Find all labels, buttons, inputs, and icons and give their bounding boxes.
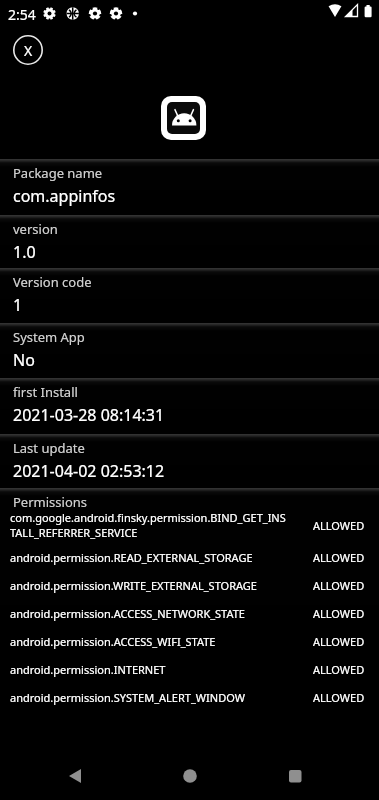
button[interactable] — [275, 756, 315, 796]
staticText: android.permission.READ_EXTERNAL_STORAGE — [10, 550, 253, 565]
staticText: 2021-03-28 08:14:31 — [13, 404, 165, 426]
button[interactable]: first Install — [0, 378, 379, 432]
staticText: No — [13, 349, 35, 371]
staticText: ALLOWED — [313, 662, 365, 677]
staticText: ALLOWED — [313, 690, 365, 705]
button[interactable]: Permissions — [0, 488, 379, 715]
staticText: Package name — [13, 164, 103, 182]
staticText: ALLOWED — [313, 578, 365, 593]
staticText: ALLOWED — [313, 634, 365, 649]
staticText: 2021-04-02 02:53:12 — [13, 460, 165, 482]
staticText: TALL_REFERRER_SERVICE — [10, 525, 138, 540]
staticText: Permissions — [13, 493, 88, 511]
staticText: com.google.android.finsky.permission.BIN… — [10, 510, 286, 525]
staticText: X — [24, 41, 33, 60]
staticText: first Install — [13, 383, 78, 401]
staticText: android.permission.ACCESS_WIFI_STATE — [10, 634, 216, 649]
staticText: ALLOWED — [313, 606, 365, 621]
staticText: Version code — [13, 273, 92, 291]
staticText: android.permission.INTERNET — [10, 662, 166, 677]
staticText: System App — [13, 328, 85, 346]
staticText: android.permission.WRITE_EXTERNAL_STORAG… — [10, 578, 257, 593]
staticText: version — [13, 220, 58, 238]
staticText: android.permission.SYSTEM_ALERT_WINDOW — [10, 690, 245, 705]
button[interactable]: Version code — [0, 268, 379, 322]
button[interactable] — [55, 756, 95, 796]
staticText: 2:54 — [8, 5, 36, 24]
button[interactable]: version — [0, 215, 379, 267]
staticText: ALLOWED — [313, 550, 365, 565]
staticText: 1 — [13, 294, 23, 316]
staticText: 1.0 — [13, 241, 36, 263]
staticText: Last update — [13, 439, 85, 457]
button[interactable]: Package name — [0, 159, 379, 213]
button[interactable]: X — [13, 35, 43, 65]
staticText: android.permission.ACCESS_NETWORK_STATE — [10, 606, 245, 621]
button[interactable]: Last update — [0, 434, 379, 488]
button[interactable] — [170, 756, 210, 796]
staticText: com.appinfos — [13, 185, 116, 207]
staticText: ALLOWED — [313, 518, 365, 533]
button[interactable]: System App — [0, 323, 379, 377]
